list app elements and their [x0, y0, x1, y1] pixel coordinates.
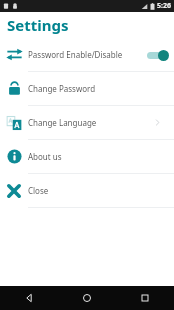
button[interactable]: Close [0, 174, 174, 207]
staticText: Close [28, 185, 140, 196]
button[interactable]: Password Enable/Disable [0, 38, 174, 71]
button[interactable]: Change Language [0, 106, 174, 139]
button[interactable]: Home [58, 286, 116, 310]
button[interactable]: Change Password [0, 72, 174, 105]
staticText: Password Enable/Disable [28, 49, 140, 60]
staticText: Change Password [28, 83, 140, 94]
button[interactable]: About us [0, 140, 174, 173]
staticText: Change Language [28, 117, 140, 128]
staticText: Settings [7, 15, 69, 35]
button[interactable]: Password Enable/Disable toggle [145, 49, 169, 61]
staticText: About us [28, 151, 140, 162]
staticText: 5:26 [157, 1, 171, 11]
button[interactable]: Back [0, 286, 58, 310]
button[interactable]: Recent apps [116, 286, 174, 310]
